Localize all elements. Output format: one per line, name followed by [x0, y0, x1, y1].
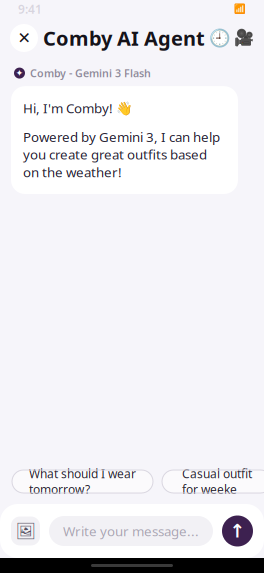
staticText: 9:41: [18, 1, 42, 17]
staticText: 🖼: [15, 522, 35, 540]
button[interactable]: What should I wear tomorrow?: [12, 470, 153, 493]
staticText: 🎥: [234, 29, 254, 47]
button[interactable]: Add image: [11, 516, 40, 545]
staticText: Hi, I'm Comby! 👋: [23, 99, 133, 117]
staticText: ✦: [15, 68, 23, 78]
button[interactable]: Write your message...: [49, 516, 213, 546]
staticText: Write your message...: [63, 522, 199, 540]
staticText: What should I wear tomorrow?: [29, 466, 136, 497]
button[interactable]: Video call: [232, 24, 256, 52]
staticText: ✕: [17, 29, 30, 47]
staticText: Powered by Gemini 3, I can help you crea…: [23, 128, 220, 181]
staticText: Comby - Gemini 3 Flash: [30, 66, 151, 80]
button[interactable]: History: [208, 24, 232, 52]
button[interactable]: Send: [222, 515, 253, 546]
button[interactable]: Close: [8, 22, 40, 54]
staticText: 📶: [234, 4, 246, 14]
staticText: 🕘: [209, 28, 231, 48]
staticText: ↑: [229, 520, 245, 542]
staticText: Casual outfit for weeke: [182, 466, 252, 497]
staticText: Comby AI Agent: [43, 25, 205, 51]
button[interactable]: Casual outfit for weeke: [162, 470, 264, 493]
